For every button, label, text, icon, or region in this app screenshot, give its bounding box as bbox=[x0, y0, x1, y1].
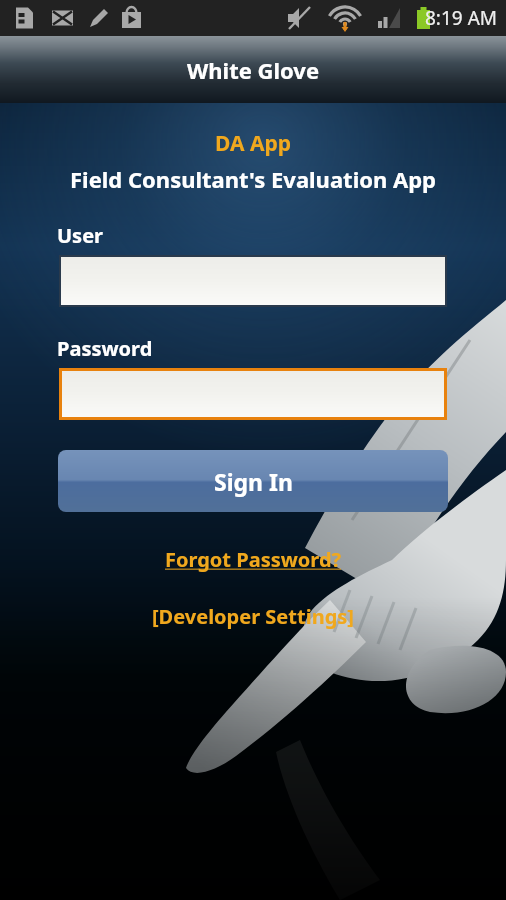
button[interactable] bbox=[61, 257, 445, 305]
staticText: [Developer Settings] bbox=[152, 603, 354, 630]
staticText: DA App bbox=[0, 129, 506, 158]
button[interactable]: Sign In bbox=[58, 450, 448, 512]
staticText: Field Consultant's Evaluation App bbox=[0, 164, 506, 194]
button[interactable]: Forgot Password? bbox=[155, 542, 352, 577]
button[interactable]: [Developer Settings] bbox=[142, 599, 364, 634]
staticText: Forgot Password? bbox=[165, 546, 342, 573]
staticText: User bbox=[57, 222, 104, 249]
staticText: Sign In bbox=[214, 466, 293, 497]
button[interactable] bbox=[62, 371, 444, 417]
staticText: White Glove bbox=[187, 55, 320, 85]
staticText: 8:19 AM bbox=[425, 5, 498, 31]
staticText: Password bbox=[57, 335, 153, 362]
